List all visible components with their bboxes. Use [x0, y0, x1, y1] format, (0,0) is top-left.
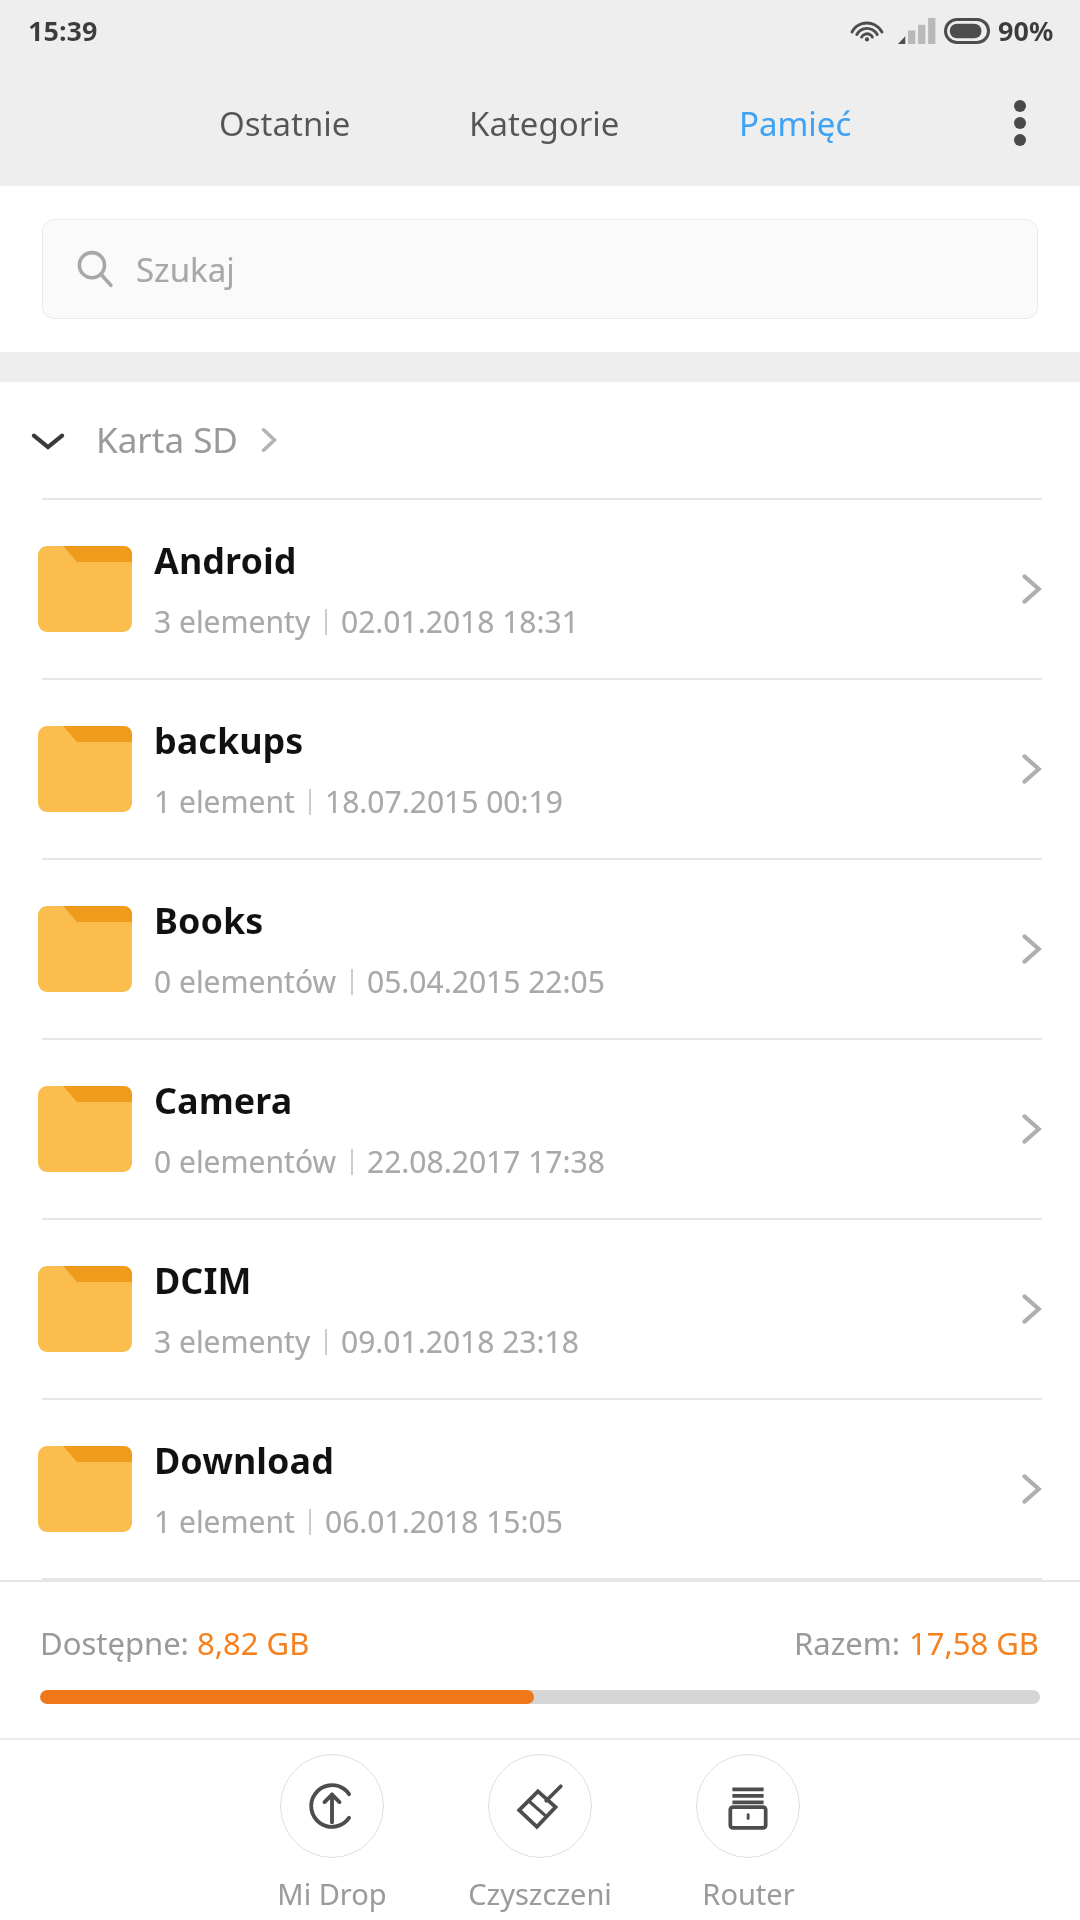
- staticText: Ostatnie: [219, 101, 351, 146]
- button[interactable]: Szukaj: [42, 219, 1038, 319]
- staticText: Download: [154, 1436, 334, 1485]
- button[interactable]: Download: [0, 1400, 1080, 1578]
- staticText: 0 elementów: [154, 1141, 337, 1182]
- staticText: Dostępne:: [40, 1622, 197, 1664]
- staticText: DCIM: [154, 1256, 252, 1305]
- staticText: Szukaj: [136, 247, 235, 292]
- staticText: 1 element: [154, 1501, 295, 1542]
- button[interactable]: Android: [0, 500, 1080, 678]
- button[interactable]: Router: [672, 1740, 824, 1913]
- staticText: 0 elementów: [154, 961, 337, 1002]
- button[interactable]: Czyszczenie: [464, 1740, 616, 1920]
- staticText: 3 elementy: [154, 601, 311, 642]
- staticText: 1 element: [154, 781, 295, 822]
- staticText: 02.01.2018 18:31: [341, 601, 579, 642]
- button[interactable]: Kategorie: [459, 85, 630, 162]
- staticText: 05.04.2015 22:05: [367, 961, 605, 1002]
- staticText: Razem:: [794, 1622, 909, 1664]
- staticText: Czyszczenie: [464, 1874, 616, 1920]
- button[interactable]: Ostatnie: [209, 85, 361, 162]
- button[interactable]: DCIM: [0, 1220, 1080, 1398]
- button[interactable]: backups: [0, 680, 1080, 858]
- staticText: Android: [154, 536, 297, 585]
- staticText: backups: [154, 716, 304, 765]
- button[interactable]: More options: [978, 81, 1062, 165]
- staticText: Router: [702, 1874, 795, 1913]
- staticText: Mi Drop: [277, 1874, 387, 1913]
- button[interactable]: Camera: [0, 1040, 1080, 1218]
- button[interactable]: Karta SD: [0, 382, 1080, 498]
- staticText: 17,58 GB: [909, 1622, 1040, 1664]
- staticText: Pamięć: [739, 101, 852, 146]
- staticText: 06.01.2018 15:05: [325, 1501, 563, 1542]
- staticText: 15:39: [28, 12, 98, 49]
- button[interactable]: Mi Drop: [256, 1740, 408, 1913]
- staticText: Karta SD: [96, 416, 238, 464]
- staticText: Camera: [154, 1076, 293, 1125]
- button[interactable]: Books: [0, 860, 1080, 1038]
- button[interactable]: Pamięć: [729, 85, 862, 162]
- staticText: 8,82 GB: [197, 1622, 310, 1664]
- staticText: Kategorie: [469, 101, 620, 146]
- staticText: 22.08.2017 17:38: [367, 1141, 605, 1182]
- staticText: 09.01.2018 23:18: [341, 1321, 579, 1362]
- staticText: 3 elementy: [154, 1321, 311, 1362]
- staticText: Books: [154, 896, 264, 945]
- staticText: 18.07.2015 00:19: [325, 781, 563, 822]
- staticText: 90%: [998, 12, 1054, 49]
